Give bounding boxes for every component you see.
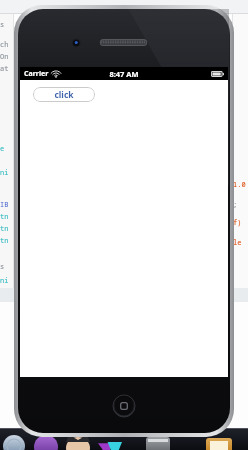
staticText: ni — [0, 276, 9, 286]
staticText: tn — [0, 212, 9, 222]
staticText: ch — [0, 40, 9, 50]
staticText: tn — [0, 224, 9, 234]
staticText: f) — [233, 218, 242, 228]
staticText: ni — [0, 168, 9, 178]
staticText: le — [233, 238, 242, 248]
staticText: 1.0 — [233, 180, 246, 190]
staticText: ; — [233, 200, 238, 210]
staticText: s — [0, 20, 5, 30]
button[interactable]: click — [33, 87, 95, 102]
staticText: click — [54, 89, 74, 101]
staticText: IB — [0, 200, 9, 210]
staticText: tn — [0, 236, 9, 246]
staticText: Carrier — [24, 69, 49, 79]
staticText: s — [0, 262, 5, 272]
button[interactable]: Home — [113, 395, 135, 417]
staticText: at — [0, 64, 9, 74]
staticText: On — [0, 52, 9, 62]
staticText: e — [0, 144, 5, 154]
staticText: 8:47 AM — [109, 69, 139, 79]
